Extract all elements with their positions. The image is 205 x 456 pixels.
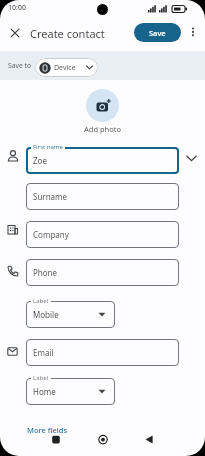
staticText: More fields bbox=[27, 425, 68, 435]
staticText: 10:00 bbox=[8, 3, 26, 13]
staticText: Label bbox=[33, 374, 49, 382]
staticText: Zoe bbox=[33, 155, 47, 166]
button[interactable] bbox=[95, 432, 111, 448]
button[interactable] bbox=[186, 24, 200, 42]
staticText: Surname bbox=[33, 191, 68, 202]
staticText: Mobile bbox=[33, 309, 59, 320]
button[interactable]: Email bbox=[26, 339, 179, 366]
button[interactable] bbox=[86, 89, 119, 122]
button[interactable] bbox=[6, 24, 24, 42]
button[interactable]: Zoe bbox=[26, 147, 179, 174]
button[interactable]: Surname bbox=[26, 183, 179, 210]
staticText: First name bbox=[33, 143, 63, 151]
staticText: Add photo bbox=[84, 124, 121, 134]
button[interactable]: Save bbox=[134, 23, 181, 42]
button[interactable]: More fields bbox=[24, 422, 71, 438]
staticText: Home bbox=[33, 386, 56, 397]
button[interactable] bbox=[141, 432, 157, 448]
staticText: Device bbox=[54, 63, 76, 73]
button[interactable]: Mobile bbox=[26, 301, 115, 328]
staticText: Phone bbox=[33, 267, 58, 278]
button[interactable] bbox=[48, 432, 64, 448]
button[interactable]: Company bbox=[26, 221, 179, 248]
staticText: Create contact bbox=[30, 26, 105, 41]
staticText: Email bbox=[33, 347, 54, 358]
staticText: Label bbox=[33, 297, 49, 305]
staticText: Save bbox=[149, 28, 166, 38]
staticText: Company bbox=[33, 229, 69, 240]
button[interactable]: Device bbox=[35, 58, 98, 77]
button[interactable]: Phone bbox=[26, 259, 179, 286]
staticText: Save to bbox=[8, 61, 32, 70]
button[interactable]: Home bbox=[26, 378, 115, 405]
